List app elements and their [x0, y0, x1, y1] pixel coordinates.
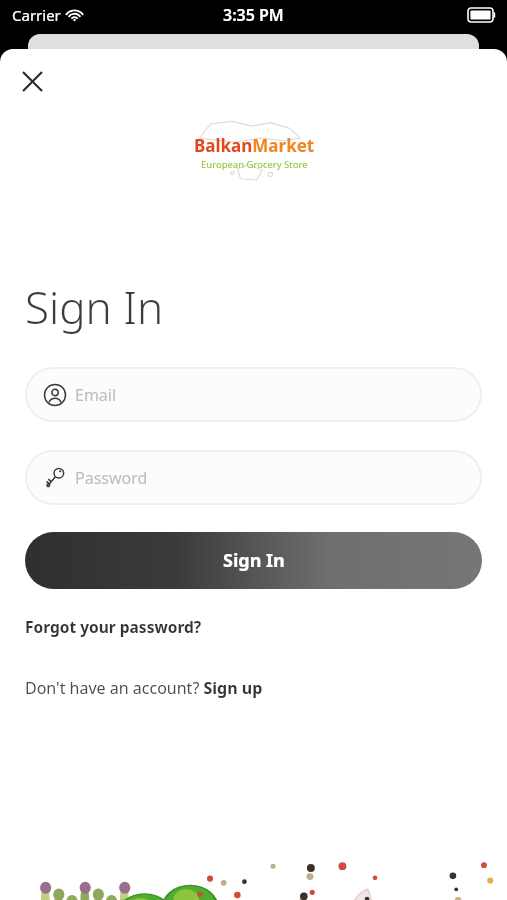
staticText: Sign In — [25, 277, 164, 337]
button[interactable]: Close — [12, 61, 52, 101]
staticText: Forgot your password? — [25, 616, 202, 637]
staticText: Email — [75, 384, 117, 406]
staticText: Password — [75, 467, 148, 489]
button[interactable]: Email — [25, 367, 482, 422]
staticText: BalkanMarket — [194, 134, 315, 157]
staticText: 3:35 PM — [223, 4, 284, 26]
button[interactable]: Forgot your password? — [25, 616, 202, 637]
button[interactable]: Don't have an account? Sign up — [25, 677, 263, 699]
staticText: Sign In — [223, 548, 285, 573]
button[interactable]: Password — [25, 450, 482, 505]
staticText: European Grocery Store — [201, 158, 308, 171]
staticText: Don't have an account? Sign up — [25, 677, 263, 699]
button[interactable]: Sign In — [25, 532, 482, 589]
staticText: Carrier — [12, 5, 61, 25]
